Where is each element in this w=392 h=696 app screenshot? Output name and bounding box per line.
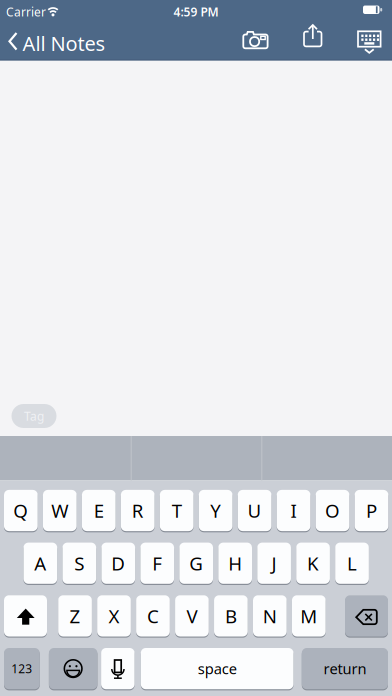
button[interactable]: D: [101, 543, 135, 584]
button[interactable]: P: [355, 490, 388, 531]
staticText: Z: [70, 603, 81, 628]
button[interactable]: O: [316, 490, 349, 531]
staticText: O: [325, 498, 340, 523]
button[interactable]: Q: [4, 490, 38, 531]
button[interactable]: M: [292, 595, 326, 636]
button[interactable]: R: [121, 490, 155, 531]
button[interactable]: W: [43, 490, 77, 531]
button[interactable]: A: [23, 543, 57, 584]
staticText: I: [291, 498, 297, 523]
staticText: K: [307, 551, 319, 576]
staticText: P: [366, 498, 377, 523]
button[interactable]: Y: [199, 490, 232, 531]
button[interactable]: Dictate: [101, 648, 135, 689]
button[interactable]: Delete: [345, 595, 388, 636]
staticText: D: [111, 551, 125, 576]
staticText: L: [347, 551, 357, 576]
staticText: B: [225, 603, 237, 628]
staticText: G: [189, 551, 203, 576]
staticText: Carrier: [6, 4, 46, 20]
button[interactable]: X: [97, 595, 131, 636]
button[interactable]: N: [253, 595, 287, 636]
staticText: All Notes: [22, 30, 105, 57]
button[interactable]: F: [140, 543, 174, 584]
staticText: M: [300, 603, 317, 628]
button[interactable]: C: [136, 595, 170, 636]
staticText: F: [152, 551, 162, 576]
button[interactable]: Camera: [238, 24, 274, 60]
staticText: H: [228, 551, 242, 576]
staticText: E: [94, 498, 104, 523]
staticText: return: [323, 659, 366, 678]
staticText: A: [34, 551, 46, 576]
staticText: T: [172, 498, 182, 523]
button[interactable]: U: [238, 490, 271, 531]
button[interactable]: Shift: [4, 595, 47, 636]
staticText: Y: [210, 498, 221, 523]
staticText: J: [272, 551, 277, 576]
staticText: V: [186, 603, 197, 628]
button[interactable]: I: [277, 490, 310, 531]
button[interactable]: Emoji: [49, 648, 97, 689]
staticText: U: [248, 498, 262, 523]
staticText: R: [132, 498, 144, 523]
staticText: 4:59 PM: [173, 4, 218, 20]
button[interactable]: Share: [297, 23, 329, 59]
staticText: S: [74, 551, 84, 576]
button[interactable]: E: [82, 490, 116, 531]
button[interactable]: K: [296, 543, 330, 584]
staticText: Q: [13, 498, 28, 523]
button[interactable]: Add Tag: [11, 404, 56, 428]
button[interactable]: T: [160, 490, 193, 531]
button[interactable]: space: [141, 648, 293, 689]
button[interactable]: G: [179, 543, 213, 584]
staticText: 123: [11, 661, 32, 676]
staticText: C: [147, 603, 159, 628]
button[interactable]: L: [335, 543, 369, 584]
button[interactable]: S: [62, 543, 96, 584]
staticText: N: [263, 603, 277, 628]
button[interactable]: J: [257, 543, 291, 584]
button[interactable]: return: [302, 648, 388, 689]
staticText: Tag: [24, 408, 44, 424]
button[interactable]: Dismiss Keyboard: [352, 24, 386, 60]
button[interactable]: B: [214, 595, 248, 636]
button[interactable]: 123: [4, 648, 40, 689]
staticText: W: [51, 498, 68, 523]
button[interactable]: H: [218, 543, 252, 584]
button[interactable]: Z: [58, 595, 92, 636]
staticText: space: [198, 659, 237, 678]
button[interactable]: All Notes: [0, 0, 150, 60]
button[interactable]: V: [175, 595, 209, 636]
staticText: X: [108, 603, 119, 628]
